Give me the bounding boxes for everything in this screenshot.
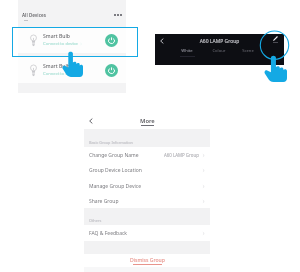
button[interactable]: Back xyxy=(85,115,97,127)
button[interactable]: White xyxy=(176,48,198,57)
button[interactable]: Manage Group Device xyxy=(89,178,205,194)
button[interactable]: Group Device Location xyxy=(89,162,205,178)
staticText: Others xyxy=(89,218,102,223)
button[interactable]: Share Group xyxy=(89,193,205,209)
button[interactable]: Scene xyxy=(237,48,259,57)
staticText: Scene xyxy=(242,48,254,54)
staticText: Colour xyxy=(212,48,226,54)
button[interactable]: Smart Bulb xyxy=(18,27,126,53)
button[interactable]: Colour xyxy=(208,48,230,57)
staticText: Connect to device xyxy=(43,71,78,77)
button[interactable]: Power xyxy=(105,34,118,47)
staticText: Basic Group Information xyxy=(89,140,133,145)
button[interactable]: All Devices xyxy=(22,12,46,21)
staticText: Connect to device xyxy=(43,41,78,47)
staticText: White xyxy=(181,48,193,54)
staticText: Manage Group Device xyxy=(89,183,141,190)
staticText: FAQ & Feedback xyxy=(89,230,128,237)
button[interactable]: Change Group Name xyxy=(89,147,205,163)
staticText: Share Group xyxy=(89,198,119,205)
staticText: All Devices xyxy=(22,12,46,18)
staticText: Group Device Location xyxy=(89,167,142,174)
button[interactable]: Power xyxy=(105,64,118,77)
button[interactable]: Back xyxy=(156,35,167,46)
staticText: Smart Bulb xyxy=(43,63,71,70)
button[interactable]: Dismiss Group xyxy=(84,257,210,265)
button[interactable]: More options xyxy=(112,9,124,21)
button[interactable]: Edit xyxy=(270,34,281,45)
staticText: Dismiss Group xyxy=(130,257,165,264)
staticText: Change Group Name xyxy=(89,152,139,159)
button[interactable]: FAQ & Feedback xyxy=(89,225,205,241)
staticText: More xyxy=(140,117,155,125)
staticText: Smart Bulb xyxy=(43,33,71,40)
staticText: A60 LAMP Group xyxy=(155,38,284,45)
button[interactable]: Smart Bulb xyxy=(18,57,126,83)
staticText: A60 LAMP Group xyxy=(164,152,199,158)
